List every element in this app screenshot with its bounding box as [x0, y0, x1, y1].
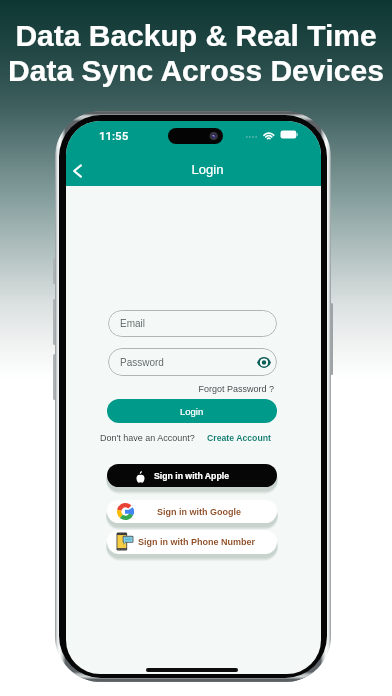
staticText: 11:55 [99, 129, 129, 142]
button[interactable]: Password [108, 348, 277, 376]
button[interactable]: Sign in with Phone Number [107, 530, 277, 554]
staticText: Sign in with Phone Number [138, 537, 255, 547]
button[interactable]: Email [108, 310, 277, 337]
staticText: Password [120, 357, 164, 368]
button[interactable]: Create Account [207, 433, 271, 443]
staticText: Sign in with Apple [154, 471, 229, 481]
staticText: Login [180, 406, 204, 417]
staticText: Data Backup & Real Time Data Sync Across… [0, 19, 392, 87]
staticText: Email [120, 318, 146, 329]
staticText: Don't have an Account? [100, 433, 195, 443]
button[interactable]: Back [66, 157, 89, 182]
button[interactable]: Login [107, 399, 277, 423]
button[interactable]: Show password [257, 357, 271, 368]
button[interactable]: Sign in with Apple [107, 464, 277, 487]
staticText: Login [94, 162, 321, 177]
button[interactable]: Forgot Password ? [105, 384, 274, 394]
button[interactable]: Sign in with Google [107, 500, 277, 523]
staticText: Sign in with Google [157, 507, 241, 517]
